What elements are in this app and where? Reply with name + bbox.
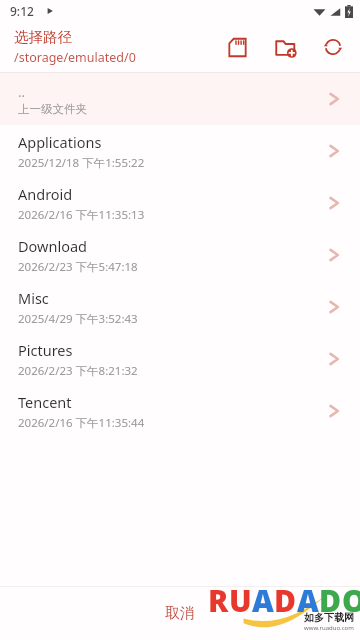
staticText: A <box>297 580 319 621</box>
staticText: Tencent <box>18 392 72 412</box>
staticText: 2026/2/16 下午11:35:13 <box>18 207 145 223</box>
staticText: D <box>319 580 342 621</box>
staticText: R <box>208 580 229 621</box>
staticText: 取消 <box>165 604 195 623</box>
staticText: Applications <box>18 132 102 152</box>
staticText: 9:12 <box>10 3 34 19</box>
staticText: Misc <box>18 288 49 308</box>
button[interactable]: Pictures <box>0 333 360 385</box>
staticText: 上一级文件夹 <box>18 102 87 116</box>
staticText: 2026/2/23 下午8:21:32 <box>18 363 138 379</box>
staticText: Android <box>18 184 73 204</box>
staticText: D <box>274 580 297 621</box>
button[interactable]: New folder <box>268 30 302 64</box>
staticText: .. <box>18 83 25 101</box>
staticText: 2025/12/18 下午1:55:22 <box>18 155 145 171</box>
staticText: Pictures <box>18 340 73 360</box>
button[interactable]: Refresh <box>316 30 350 64</box>
button[interactable]: Android <box>0 177 360 229</box>
staticText: /storage/emulated/0 <box>14 49 136 66</box>
button[interactable]: Tencent <box>0 385 360 437</box>
button[interactable]: .. <box>0 73 360 125</box>
button[interactable]: SD card <box>220 30 254 64</box>
staticText: 如多下载网 <box>304 611 354 624</box>
staticText: U <box>229 580 252 621</box>
staticText: A <box>252 580 274 621</box>
staticText: 2025/4/29 下午3:52:43 <box>18 311 138 327</box>
staticText: 选择路径 <box>14 28 72 46</box>
staticText: 2026/2/23 下午5:47:18 <box>18 259 138 275</box>
button[interactable]: 取消 <box>0 587 360 640</box>
button[interactable]: Misc <box>0 281 360 333</box>
staticText: 2026/2/16 下午11:35:44 <box>18 415 145 431</box>
button[interactable]: Download <box>0 229 360 281</box>
staticText: www.ruaduo.com <box>304 624 354 632</box>
button[interactable]: Applications <box>0 125 360 177</box>
staticText: Download <box>18 236 87 256</box>
staticText: O <box>342 580 356 621</box>
